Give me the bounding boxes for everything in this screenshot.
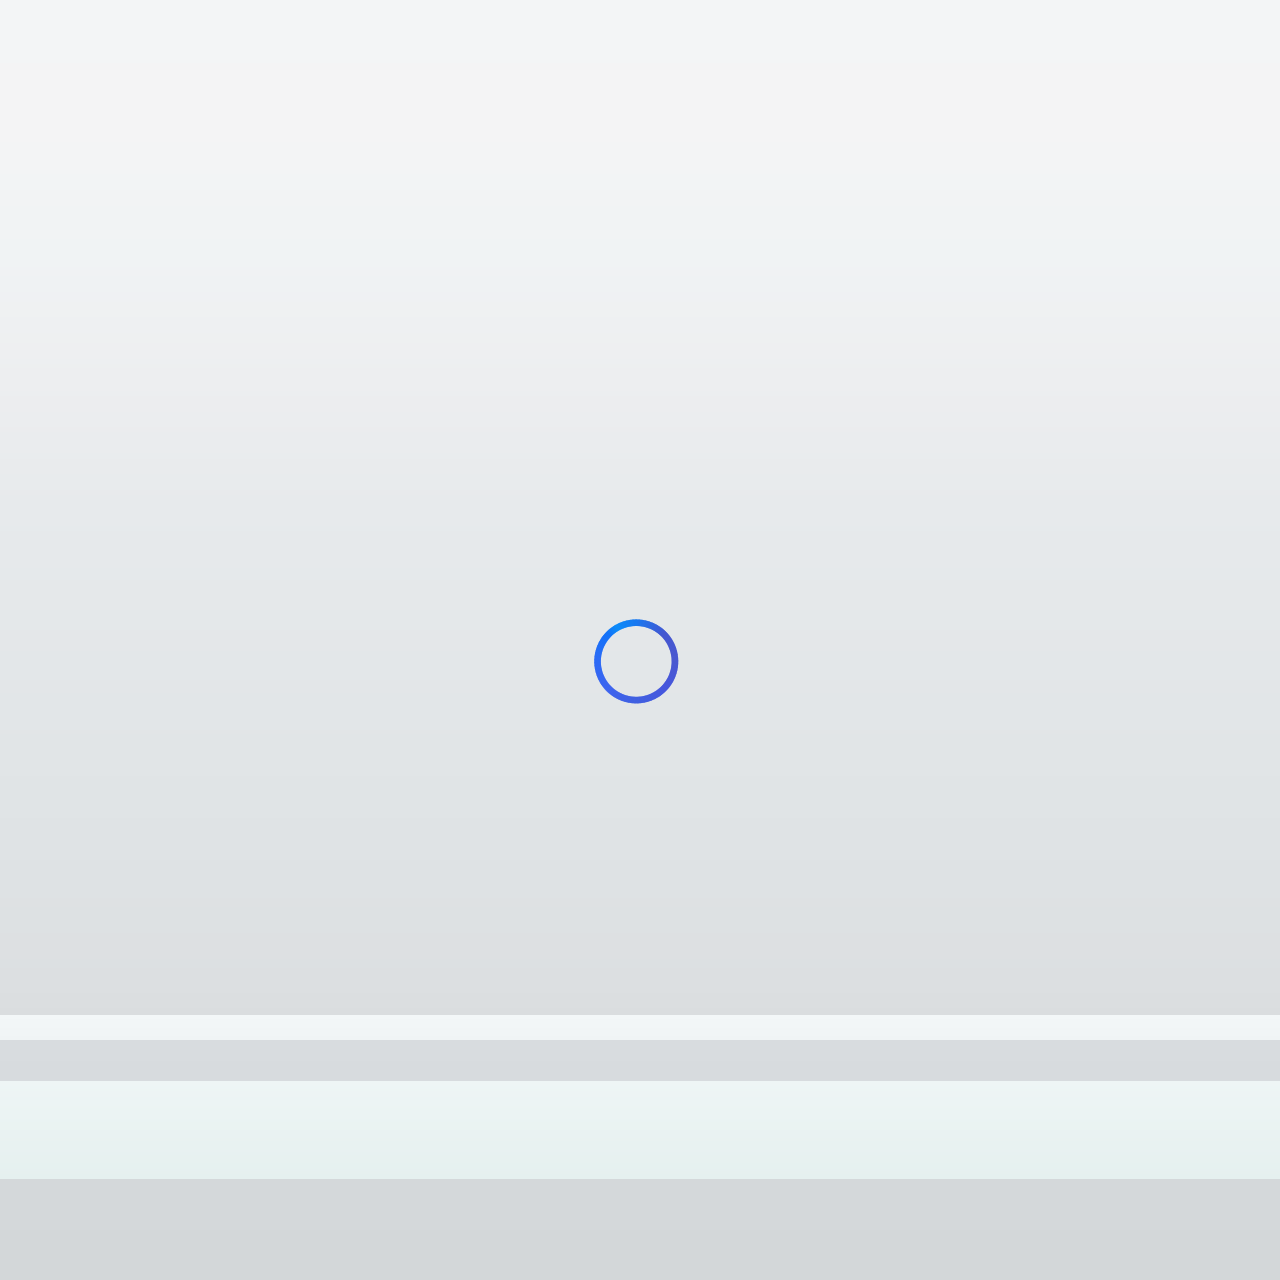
- group: Loading: [588, 613, 684, 709]
